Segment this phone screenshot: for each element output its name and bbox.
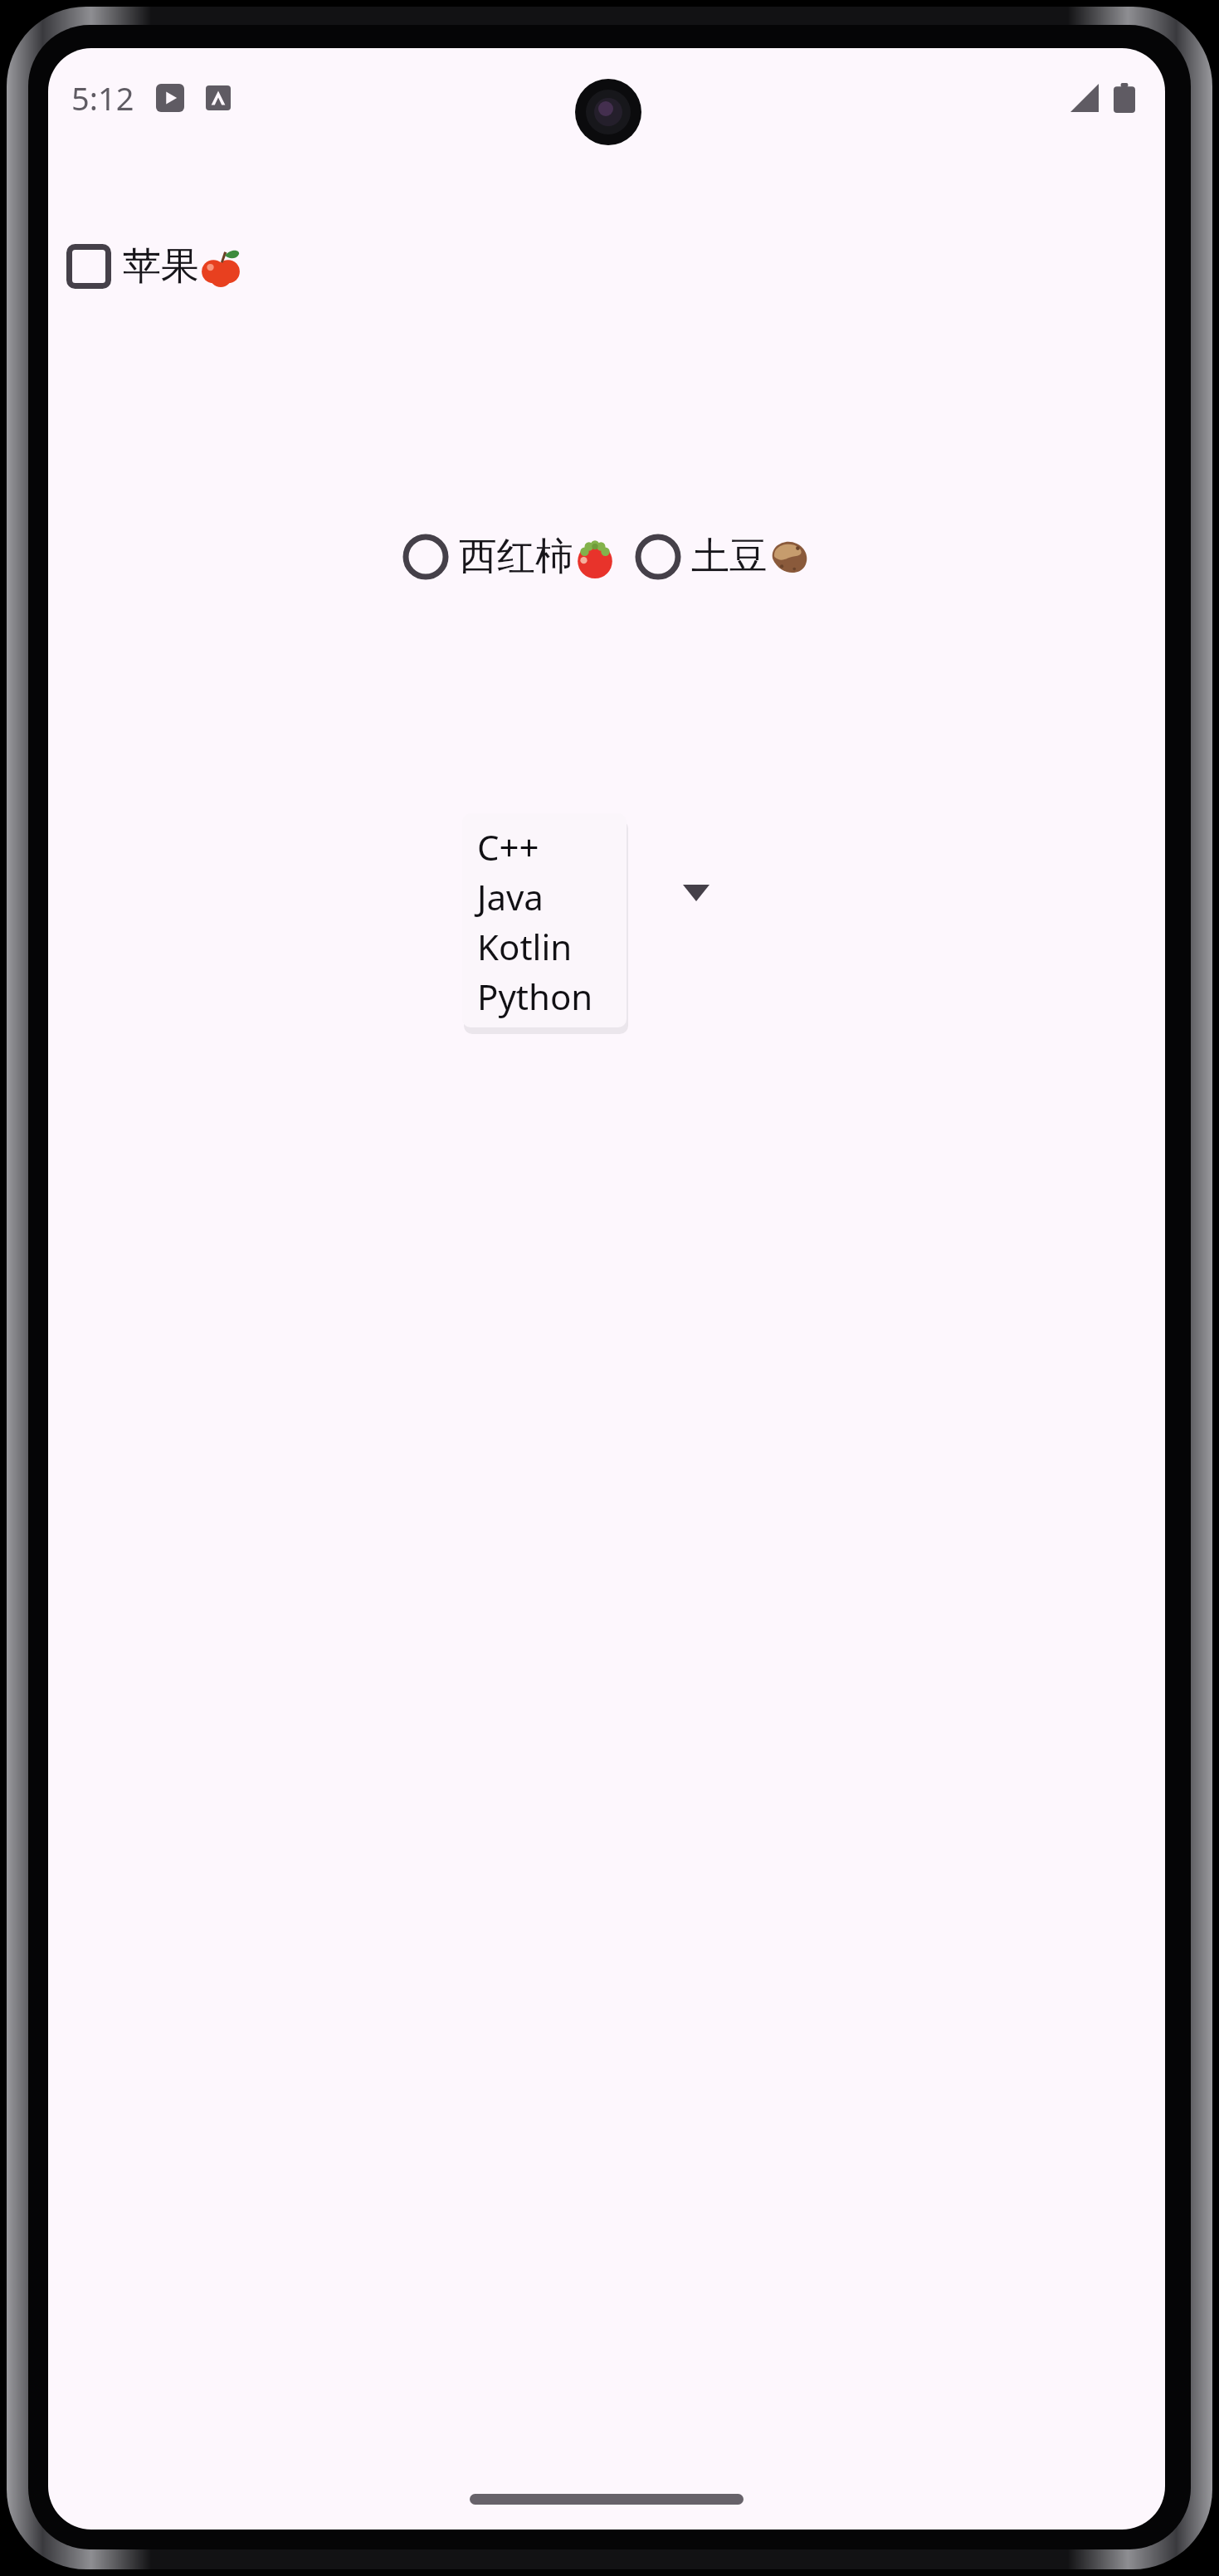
staticText: 5:12 <box>71 76 134 120</box>
button[interactable]: Java <box>477 871 627 921</box>
staticText: 西红柿 <box>459 533 573 581</box>
staticText: 土豆 <box>691 533 768 581</box>
staticText: C++ <box>477 823 539 871</box>
button[interactable]: Open dropdown <box>675 871 718 915</box>
button[interactable]: C++ <box>462 813 627 1027</box>
staticText: Java <box>477 873 544 920</box>
staticText: 苹果 <box>123 242 199 290</box>
button[interactable]: 西红柿 <box>402 528 617 586</box>
staticText: Kotlin <box>477 923 573 970</box>
button[interactable]: 土豆 <box>635 528 811 586</box>
button[interactable]: Kotlin <box>477 921 627 971</box>
staticText: Python <box>477 973 593 1020</box>
button[interactable]: Python <box>477 971 627 1021</box>
button[interactable]: C++ <box>477 822 627 871</box>
button[interactable]: 苹果 <box>63 237 246 295</box>
